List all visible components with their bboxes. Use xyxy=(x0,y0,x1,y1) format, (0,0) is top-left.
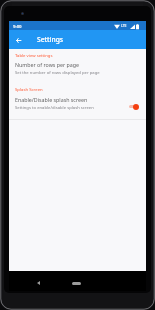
button[interactable]: Navigate up xyxy=(9,31,27,49)
staticText: Enable/Disable splash screen xyxy=(15,96,88,103)
staticText: Set the number of rows displayed per pag… xyxy=(15,70,100,76)
staticText: 9:00 xyxy=(13,23,22,29)
staticText: Table view settings xyxy=(15,52,53,58)
staticText: LTE xyxy=(121,23,127,28)
button[interactable]: Home xyxy=(69,277,83,289)
staticText: Number of rows per page xyxy=(15,61,80,68)
staticText: Settings to enable/disable splash screen xyxy=(15,105,94,111)
button[interactable]: Number of rows per page xyxy=(9,61,146,76)
staticText: Splash Screen xyxy=(15,86,43,92)
staticText: Settings xyxy=(37,35,64,44)
button[interactable]: Enable/Disable splash screen xyxy=(9,96,146,111)
button[interactable]: Back xyxy=(31,277,45,289)
